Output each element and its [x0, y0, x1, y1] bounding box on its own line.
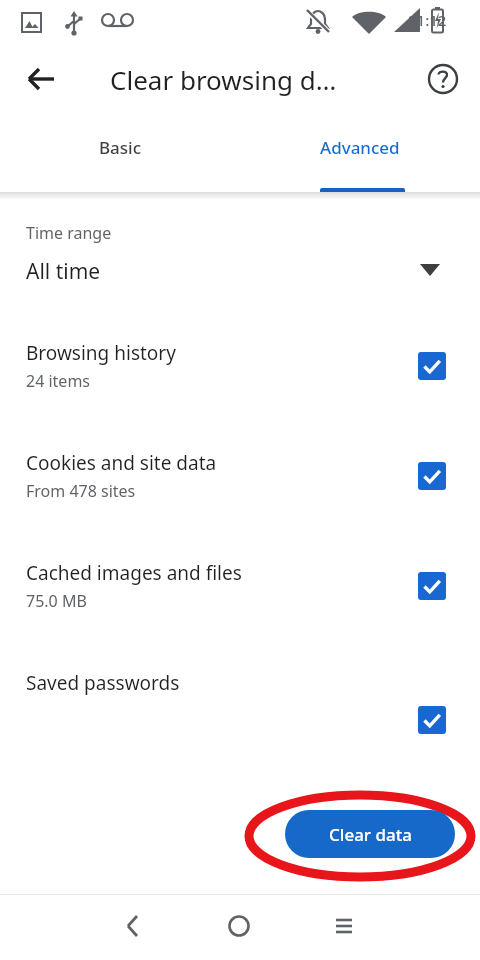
staticText: Cached images and files	[26, 560, 242, 586]
button[interactable]: Home	[215, 902, 263, 950]
staticText: Advanced	[320, 136, 400, 159]
button[interactable]: Clear data	[285, 810, 455, 858]
button[interactable]: Browsing history checkbox	[418, 352, 446, 380]
button[interactable]: Cached images and files	[0, 552, 480, 624]
button[interactable]: Cookies and site data	[0, 442, 480, 514]
staticText: 24 items	[26, 370, 91, 392]
button[interactable]: Navigate up	[20, 55, 68, 103]
button[interactable]: Cached images and files checkbox	[418, 572, 446, 600]
staticText: Cookies and site data	[26, 450, 217, 476]
staticText: Time range	[26, 222, 112, 244]
staticText: Clear browsing d…	[110, 62, 337, 97]
button[interactable]: Cookies and site data checkbox	[418, 462, 446, 490]
button[interactable]: Time range	[0, 200, 480, 296]
staticText: Basic	[99, 136, 142, 159]
staticText: All time	[26, 257, 101, 286]
staticText: Clear data	[329, 823, 412, 846]
button[interactable]: Recent apps	[320, 902, 368, 950]
staticText: 21:12	[408, 10, 447, 30]
button[interactable]: Basic	[0, 112, 240, 192]
staticText: Browsing history	[26, 340, 176, 366]
button[interactable]: Browsing history	[0, 332, 480, 404]
staticText: From 478 sites	[26, 480, 136, 502]
staticText: 75.0 MB	[26, 590, 87, 612]
staticText: Saved passwords	[26, 670, 180, 696]
button[interactable]: Help	[419, 55, 467, 103]
button[interactable]: Back	[109, 902, 157, 950]
button[interactable]: Saved passwords checkbox	[418, 706, 446, 734]
button[interactable]: Saved passwords	[0, 662, 480, 772]
button[interactable]: Advanced	[240, 112, 480, 192]
